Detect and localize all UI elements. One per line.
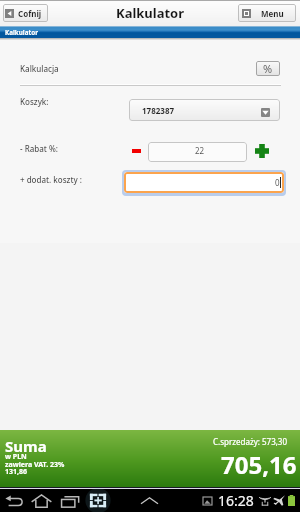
button[interactable]: Zrzut ekranu xyxy=(89,493,107,508)
button[interactable]: Pokaz pasek stanu xyxy=(141,497,158,505)
staticText: - Rabat %: xyxy=(20,143,58,154)
button[interactable]: Zwieksz rabat xyxy=(254,143,269,158)
staticText: 1782387 xyxy=(142,105,175,116)
staticText: Menu xyxy=(261,8,284,19)
button[interactable]: 22 xyxy=(148,142,247,162)
button[interactable]: Procent xyxy=(256,61,280,76)
staticText: C.sprzedaży: 573,30 xyxy=(213,436,288,447)
staticText: Kalkulator xyxy=(116,4,185,22)
button[interactable]: Ekran glowny xyxy=(31,494,52,508)
button[interactable]: Ostatnie aplikacje xyxy=(61,494,80,508)
button[interactable]: 1782387 xyxy=(129,99,280,121)
staticText: 705,16 xyxy=(221,448,297,481)
staticText: % xyxy=(263,61,273,76)
button[interactable]: Menu xyxy=(238,4,296,22)
staticText: + dodat. koszty : xyxy=(20,174,82,185)
button[interactable]: Cofnij xyxy=(3,4,48,22)
staticText: zawiera VAT. 23% xyxy=(5,460,65,470)
staticText: w PLN xyxy=(5,452,27,462)
staticText: 16:28 xyxy=(218,491,254,510)
button[interactable]: 0 xyxy=(124,172,284,193)
staticText: 0 xyxy=(275,177,280,188)
button[interactable]: Wstecz xyxy=(5,495,23,508)
staticText: Suma xyxy=(5,436,47,456)
staticText: Koszyk: xyxy=(20,96,49,107)
staticText: 22 xyxy=(195,145,205,156)
staticText: Kalkulacja xyxy=(20,63,59,74)
staticText: Kalkulator xyxy=(5,28,38,37)
button[interactable]: Zmniejsz rabat xyxy=(129,143,143,158)
staticText: Cofnij xyxy=(18,8,42,19)
staticText: 131,86 xyxy=(5,467,28,477)
